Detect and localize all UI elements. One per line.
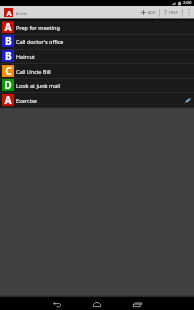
- staticText: C: [5, 64, 12, 76]
- staticText: Exercise: [16, 97, 37, 104]
- staticText: A: [6, 8, 12, 17]
- staticText: ADD: [148, 10, 156, 15]
- staticText: Call doctor's office: [16, 38, 64, 45]
- button[interactable]: Home: [90, 299, 104, 310]
- staticText: A: [4, 20, 12, 32]
- button[interactable]: ADD: [138, 6, 159, 19]
- button[interactable]: A: [0, 94, 194, 106]
- staticText: HELP: [169, 10, 178, 15]
- staticText: B: [5, 34, 12, 46]
- staticText: ?: [164, 8, 167, 17]
- button[interactable]: More options: [183, 6, 194, 19]
- button[interactable]: C: [0, 65, 194, 77]
- staticText: A List: [16, 10, 27, 16]
- button[interactable]: D: [0, 79, 194, 91]
- staticText: Prep for meeting: [16, 24, 60, 31]
- button[interactable]: ?: [160, 6, 182, 19]
- staticText: D: [4, 78, 12, 90]
- button[interactable]: Recents: [130, 299, 144, 310]
- button[interactable]: Back: [50, 299, 64, 310]
- staticText: Call Uncle Bill: [16, 68, 51, 75]
- button[interactable]: Edit: [182, 95, 192, 105]
- staticText: Look at junk mail: [16, 82, 61, 89]
- staticText: 2:00: [183, 0, 192, 6]
- staticText: A: [4, 93, 12, 105]
- button[interactable]: A: [0, 21, 194, 33]
- staticText: B: [5, 49, 12, 61]
- button[interactable]: B: [0, 50, 194, 62]
- staticText: Haircut: [16, 53, 35, 60]
- button[interactable]: B: [0, 35, 194, 47]
